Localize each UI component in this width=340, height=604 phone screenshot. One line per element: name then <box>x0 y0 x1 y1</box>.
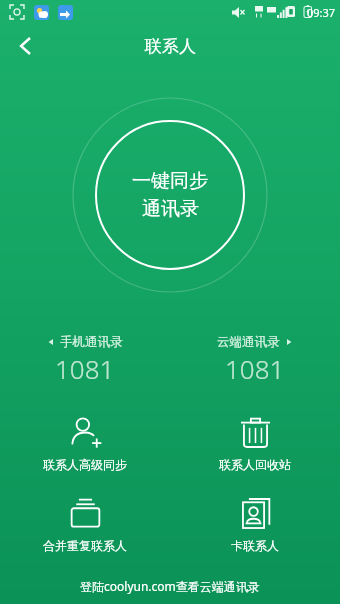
button[interactable]: 一键同步 <box>72 97 268 293</box>
button[interactable]: 合并重复联系人 <box>0 495 170 555</box>
staticText: 云端通讯录 <box>217 334 280 350</box>
button[interactable]: 云端通讯录 <box>170 332 340 388</box>
staticText: 1081 <box>225 351 285 386</box>
button[interactable]: Back <box>0 24 46 68</box>
button[interactable]: 卡联系人 <box>170 495 340 555</box>
button[interactable]: 手机通讯录 <box>0 332 170 388</box>
staticText: 合并重复联系人 <box>43 538 127 553</box>
button[interactable]: 登陆coolyun.com查看云端通讯录 <box>72 574 268 604</box>
staticText: 手机通讯录 <box>60 334 123 350</box>
button[interactable]: 联系人高级同步 <box>0 414 170 474</box>
button[interactable]: 联系人回收站 <box>170 414 340 474</box>
staticText: 联系人高级同步 <box>43 457 127 472</box>
staticText: 联系人 <box>145 36 196 57</box>
staticText: 卡联系人 <box>231 538 279 553</box>
staticText: 登陆coolyun.com查看云端通讯录 <box>80 578 260 594</box>
staticText: 1081 <box>55 351 115 386</box>
staticText: 联系人回收站 <box>219 457 291 472</box>
staticText: 通讯录 <box>142 197 199 221</box>
staticText: 09:37 <box>307 5 336 20</box>
staticText: 一键同步 <box>132 169 208 193</box>
